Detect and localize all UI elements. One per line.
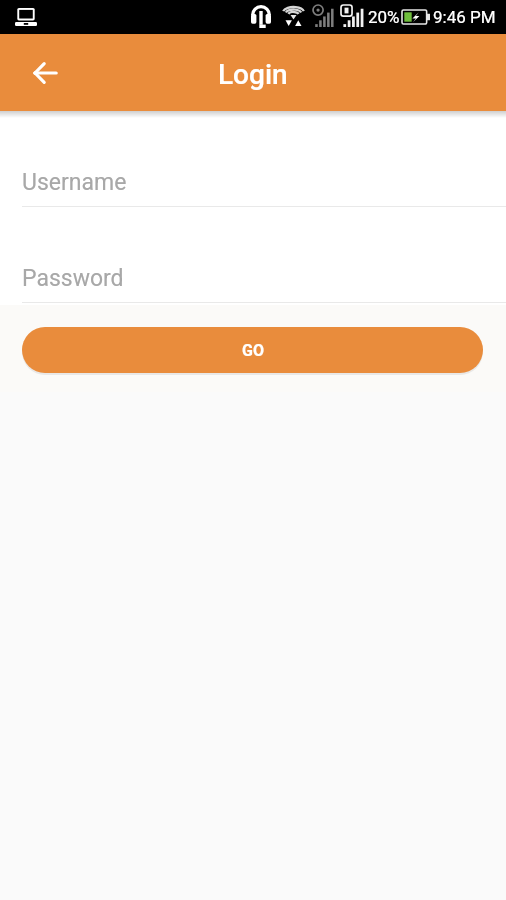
button[interactable]: Back <box>22 50 68 96</box>
staticText: GO <box>242 341 264 360</box>
staticText: 20% <box>368 7 400 27</box>
button[interactable]: Password <box>22 256 506 303</box>
staticText: Password <box>22 265 124 292</box>
staticText: 9:46 PM <box>433 7 496 27</box>
staticText: Login <box>218 58 288 91</box>
button[interactable]: Username <box>22 160 506 207</box>
staticText: Username <box>22 169 127 196</box>
button[interactable]: GO <box>22 327 483 373</box>
